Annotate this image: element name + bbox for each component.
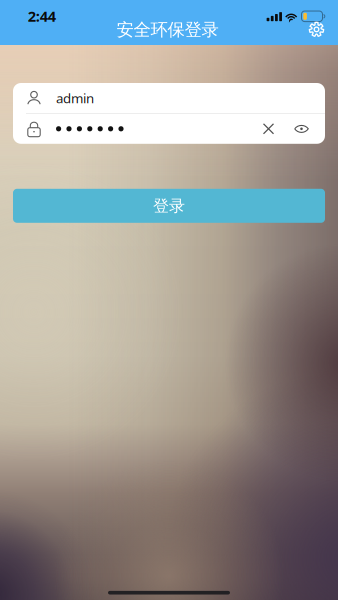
button[interactable]: 登录: [13, 189, 325, 223]
staticText: admin: [56, 89, 94, 107]
staticText: 登录: [153, 196, 185, 216]
button[interactable]: Settings: [302, 15, 330, 43]
button[interactable]: Clear: [259, 119, 278, 138]
staticText: 2:44: [28, 6, 56, 26]
staticText: 安全环保登录: [116, 19, 218, 40]
button[interactable]: Show password: [291, 119, 312, 138]
